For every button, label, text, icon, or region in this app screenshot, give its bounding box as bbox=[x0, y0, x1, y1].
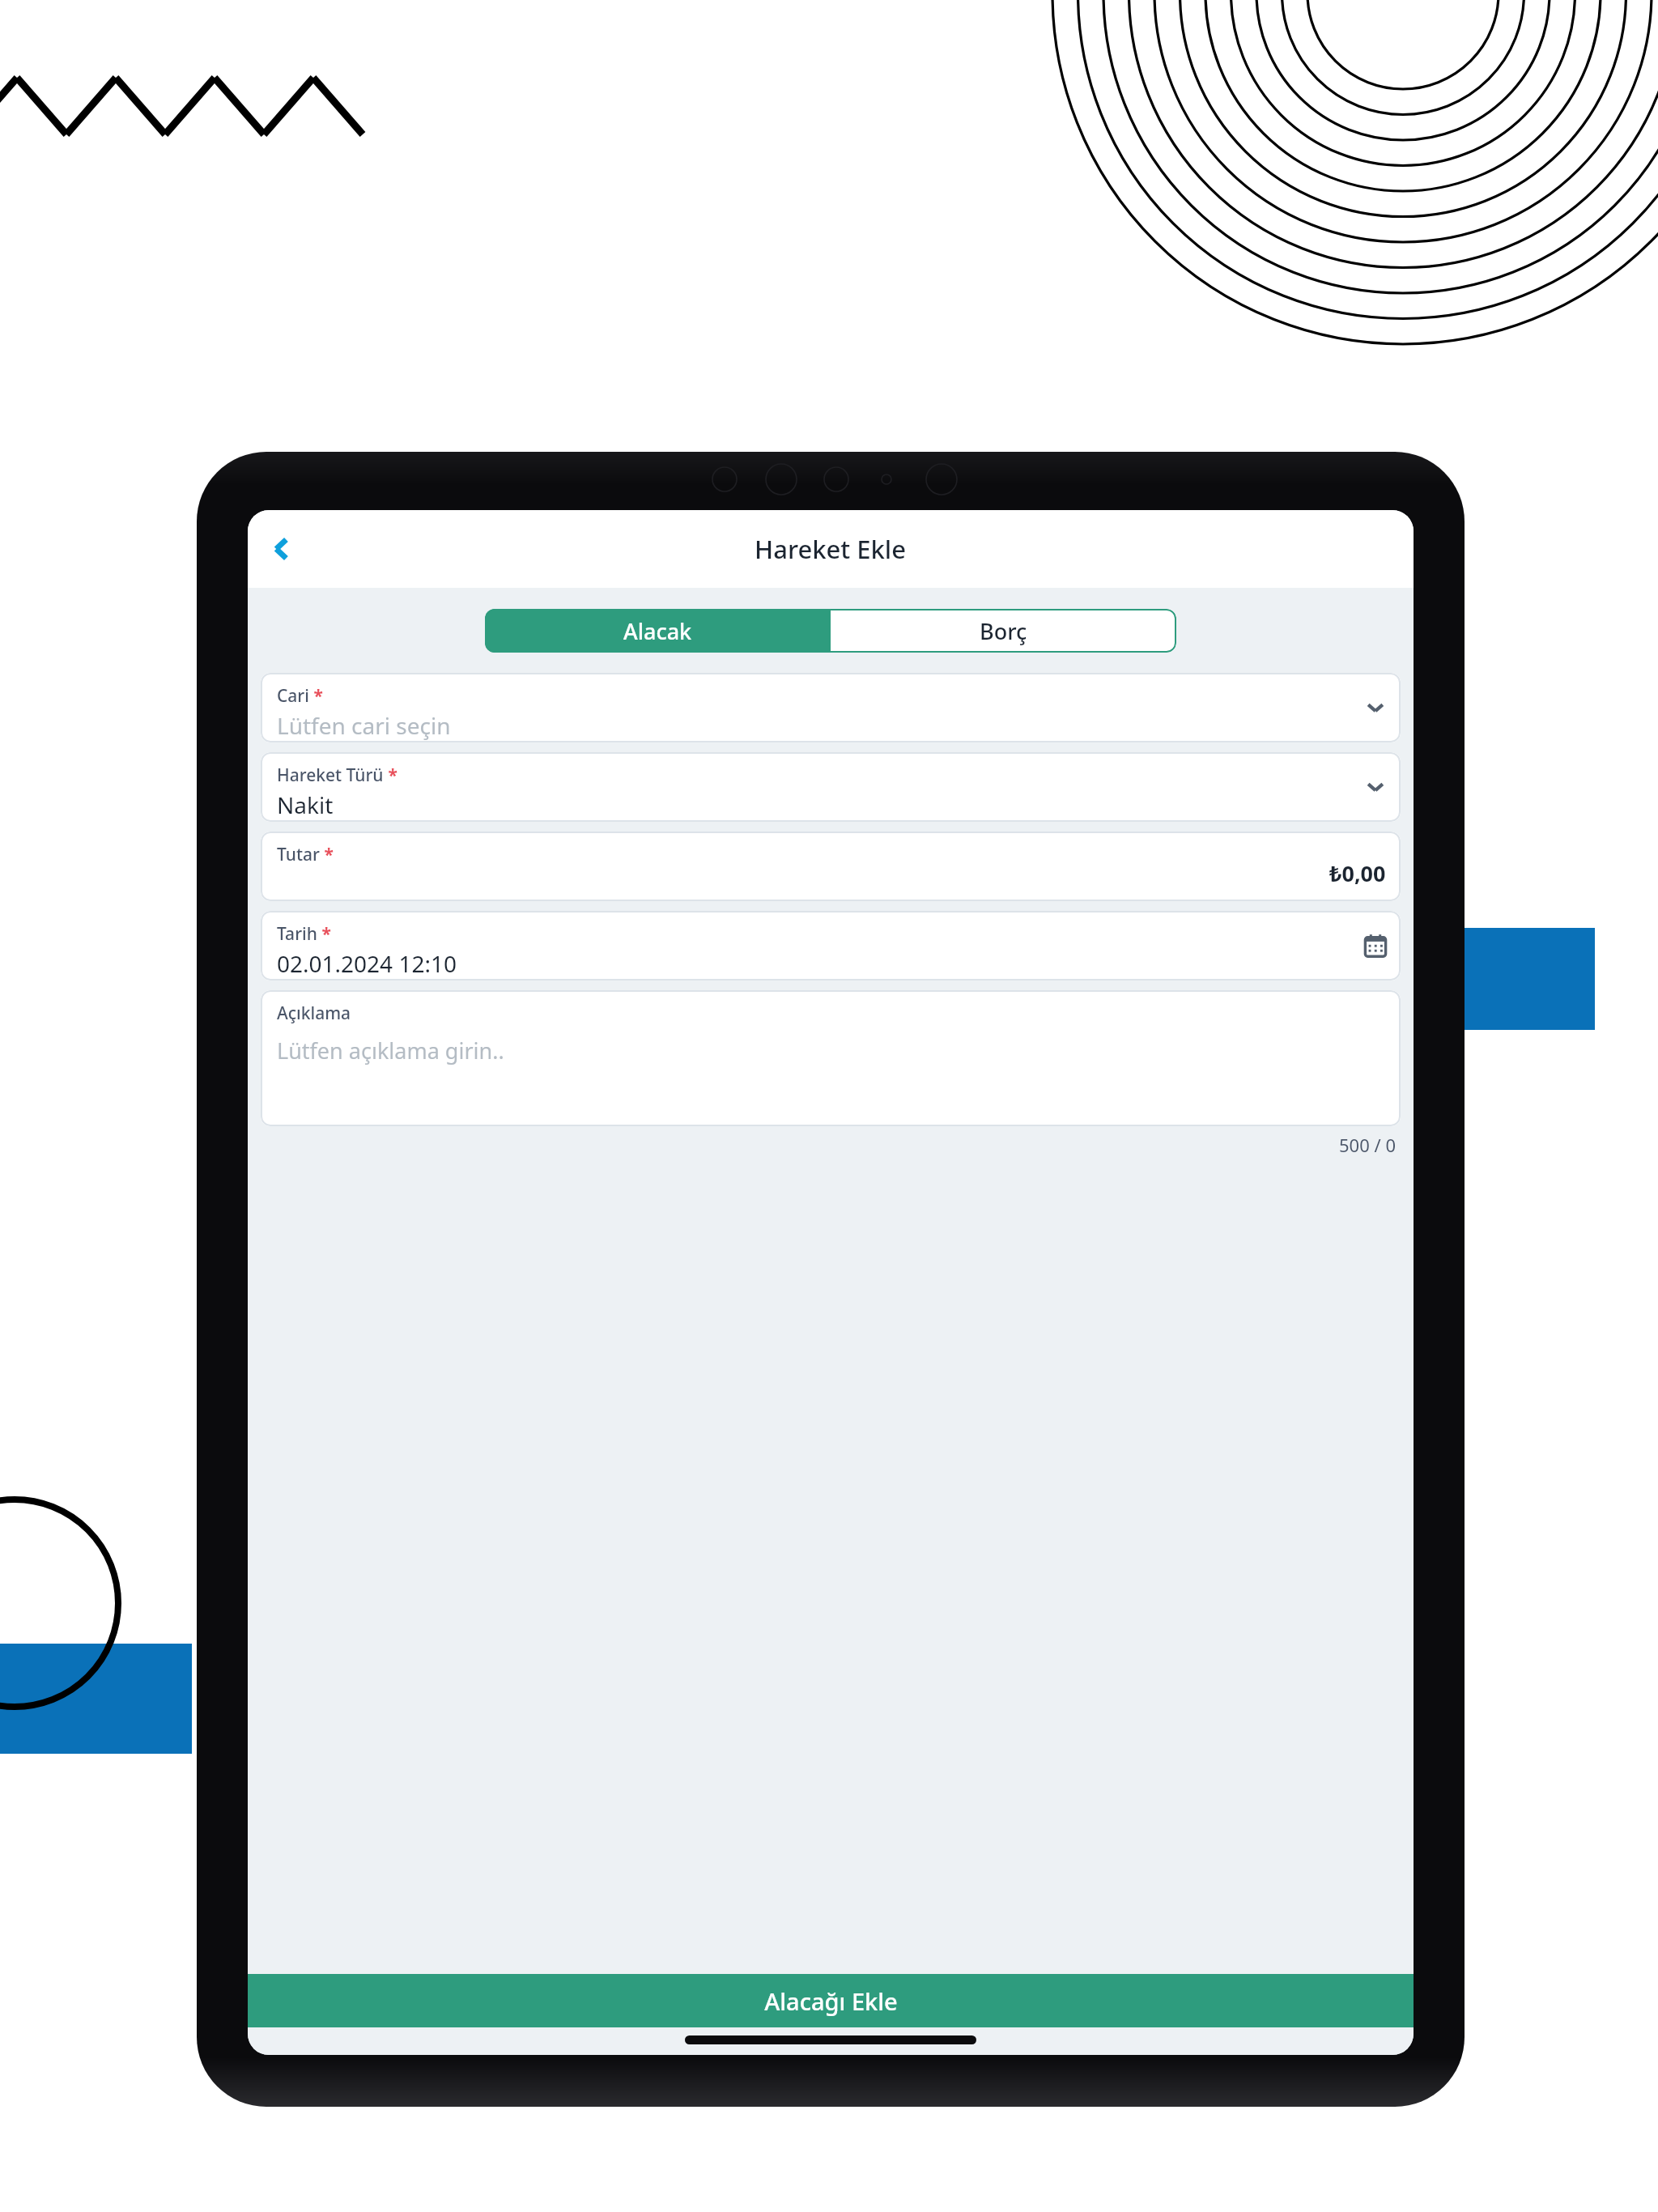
staticText: Alacağı Ekle bbox=[764, 1985, 898, 2017]
staticText: Borç bbox=[980, 616, 1027, 646]
staticText: * bbox=[317, 922, 331, 946]
button[interactable]: Borç bbox=[831, 609, 1176, 653]
button[interactable]: Açıklama bbox=[261, 990, 1401, 1126]
button[interactable]: Hareket Türü bbox=[261, 752, 1401, 822]
staticText: Açıklama bbox=[277, 1002, 351, 1025]
button[interactable]: Tarih bbox=[261, 911, 1401, 981]
staticText: * bbox=[384, 764, 397, 787]
button[interactable]: Cari bbox=[261, 673, 1401, 742]
staticText: 500 / 0 bbox=[1339, 1133, 1396, 1157]
staticText: ₺0,00 bbox=[1329, 858, 1386, 888]
staticText: Tarih bbox=[277, 922, 317, 946]
button[interactable]: Back bbox=[253, 520, 311, 578]
staticText: 02.01.2024 12:10 bbox=[277, 948, 457, 979]
button[interactable]: Alacak bbox=[485, 609, 831, 653]
staticText: Tutar bbox=[277, 843, 320, 866]
staticText: Cari bbox=[277, 684, 309, 708]
staticText: * bbox=[320, 843, 334, 866]
staticText: Lütfen açıklama girin.. bbox=[277, 1036, 504, 1066]
staticText: Hareket Ekle bbox=[755, 532, 907, 566]
staticText: Nakit bbox=[277, 789, 334, 820]
staticText: Lütfen cari seçin bbox=[277, 710, 451, 741]
button[interactable]: Tutar bbox=[261, 832, 1401, 901]
staticText: Hareket Türü bbox=[277, 764, 384, 787]
staticText: * bbox=[309, 684, 323, 708]
staticText: Alacak bbox=[623, 616, 692, 646]
button[interactable]: Alacağı Ekle bbox=[248, 1974, 1414, 2027]
